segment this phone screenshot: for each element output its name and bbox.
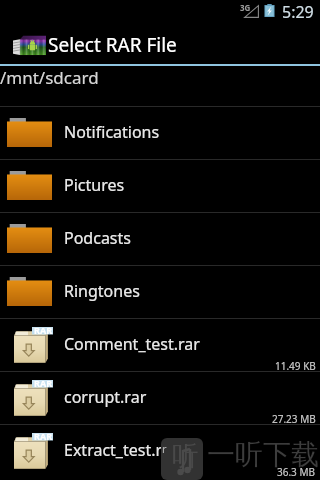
staticText: Extract_test.rar	[64, 439, 178, 461]
staticText: r	[162, 441, 167, 456]
staticText: 11.49 KB	[275, 359, 316, 373]
staticText: Notifications	[64, 121, 160, 143]
staticText: Pictures	[64, 174, 125, 196]
staticText: RAR	[34, 324, 53, 336]
button[interactable]: RAR	[0, 424, 320, 477]
button[interactable]: Pictures	[0, 159, 320, 212]
staticText: RAR	[34, 377, 53, 389]
staticText: corrupt.rar	[64, 386, 147, 408]
button[interactable]: RAR	[0, 318, 320, 371]
staticText: Podcasts	[64, 227, 131, 249]
staticText: 27.23 MB	[272, 412, 316, 426]
button[interactable]: Ringtones	[0, 265, 320, 318]
staticText: 听	[172, 439, 199, 473]
button[interactable]: RAR	[0, 371, 320, 424]
staticText: Comment_test.rar	[64, 333, 200, 355]
button[interactable]: Notifications	[0, 106, 320, 159]
staticText: 36.3 MB	[277, 465, 316, 479]
staticText: 一听下载	[207, 437, 319, 472]
staticText: Ringtones	[64, 280, 140, 302]
staticText: 3G	[240, 2, 251, 13]
button[interactable]: Podcasts	[0, 212, 320, 265]
staticText: RAR	[34, 430, 53, 442]
staticText: /mnt/sdcard	[0, 66, 99, 89]
staticText: Select RAR File	[48, 32, 177, 58]
staticText: 5:29	[282, 1, 314, 23]
